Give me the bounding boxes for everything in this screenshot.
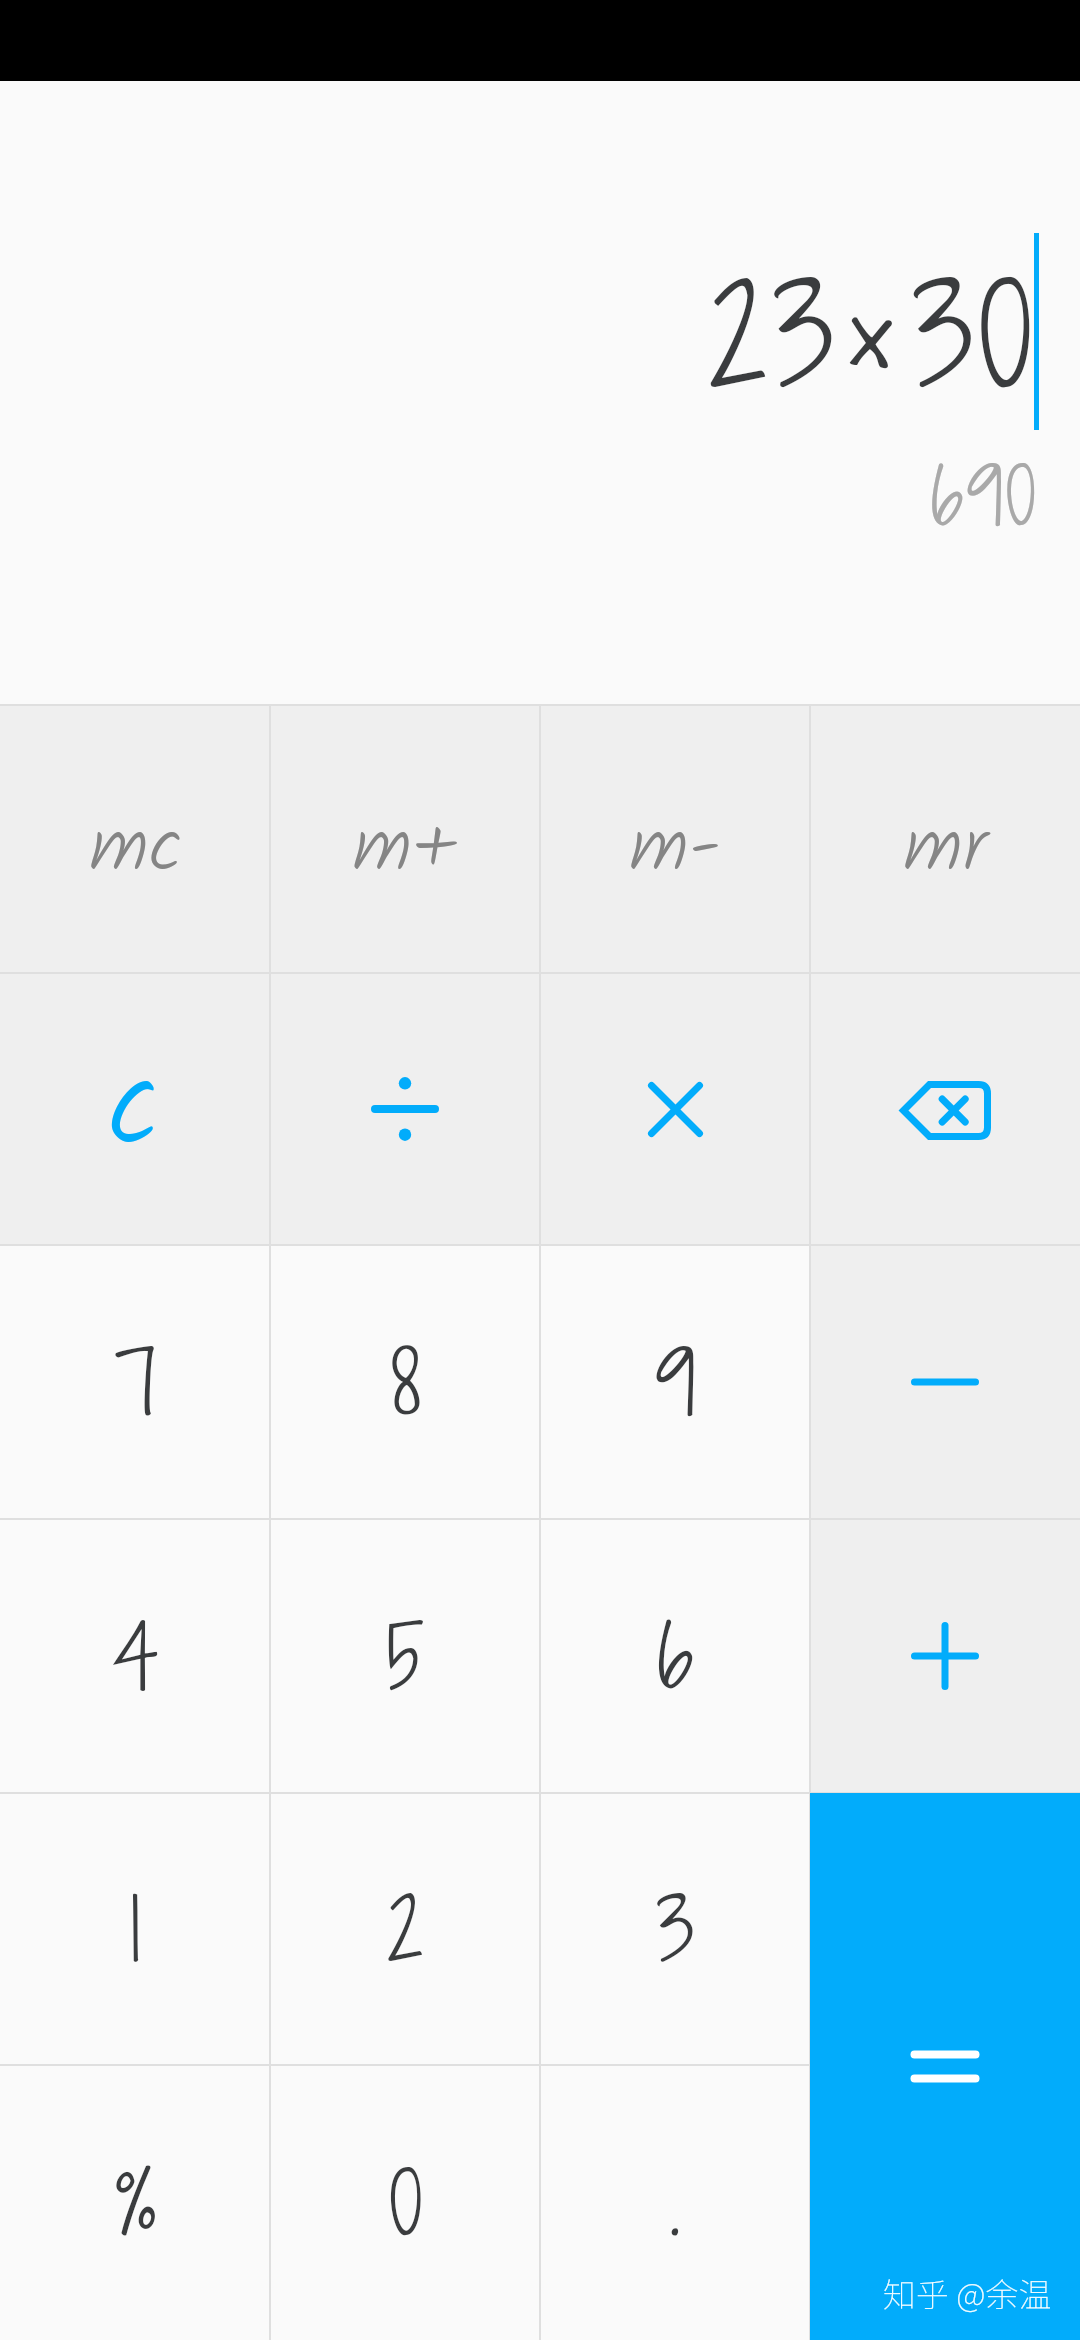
staticText: 6: [656, 1596, 694, 1716]
button[interactable]: C: [0, 973, 270, 1245]
staticText: 知乎 @余温: [883, 2269, 1052, 2317]
other: Plus: [911, 1622, 979, 1690]
button[interactable]: 3: [540, 1793, 810, 2065]
button[interactable]: mc: [0, 705, 270, 973]
button[interactable]: Multiply: [540, 973, 810, 1245]
staticText: 2: [387, 1869, 424, 1989]
button[interactable]: Divide: [270, 973, 540, 1245]
other: Backspace: [900, 1081, 991, 1140]
button[interactable]: 6: [540, 1519, 810, 1793]
button[interactable]: 9: [540, 1245, 810, 1519]
button[interactable]: 4: [0, 1519, 270, 1793]
staticText: m-: [629, 789, 721, 910]
button[interactable]: mr: [810, 705, 1080, 973]
staticText: .: [669, 2143, 681, 2263]
staticText: mr: [903, 789, 987, 910]
staticText: C: [106, 1052, 158, 1189]
staticText: 9: [655, 1322, 696, 1442]
other: Multiply: [648, 1082, 703, 1137]
staticText: %: [114, 2143, 156, 2263]
button[interactable]: Equals: [810, 1793, 1080, 2340]
staticText: m+: [352, 789, 458, 910]
button[interactable]: Plus: [810, 1519, 1080, 1793]
button[interactable]: .: [540, 2065, 810, 2340]
button[interactable]: 8: [270, 1245, 540, 1519]
button[interactable]: 2: [270, 1793, 540, 2065]
staticText: 3: [656, 1869, 695, 1989]
button[interactable]: 0: [270, 2065, 540, 2340]
button[interactable]: 5: [270, 1519, 540, 1793]
staticText: 1: [129, 1869, 141, 1989]
staticText: 690: [0, 442, 1038, 551]
staticText: 8: [390, 1322, 421, 1442]
button[interactable]: 1: [0, 1793, 270, 2065]
other: Minus: [911, 1378, 979, 1386]
other: Equals: [911, 2051, 979, 2082]
staticText: 23×30: [0, 238, 1036, 432]
staticText: 5: [386, 1596, 425, 1716]
staticText: 0: [389, 2143, 422, 2263]
button[interactable]: Backspace: [810, 973, 1080, 1245]
staticText: mc: [89, 789, 181, 910]
button[interactable]: Minus: [810, 1245, 1080, 1519]
staticText: 4: [112, 1596, 159, 1716]
other: Divide: [371, 1077, 439, 1141]
button[interactable]: 7: [0, 1245, 270, 1519]
staticText: 7: [114, 1322, 157, 1442]
button[interactable]: %: [0, 2065, 270, 2340]
button[interactable]: m+: [270, 705, 540, 973]
button[interactable]: m-: [540, 705, 810, 973]
